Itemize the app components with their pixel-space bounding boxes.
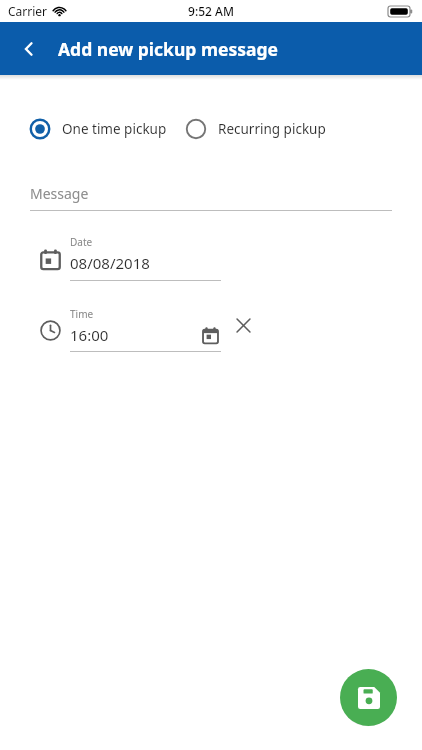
staticText: 9:52 AM — [188, 3, 234, 19]
button[interactable]: Back — [0, 22, 58, 75]
button[interactable]: One time pickup — [29, 118, 167, 140]
button[interactable]: Recurring pickup — [185, 118, 326, 140]
staticText: Time — [70, 307, 94, 321]
staticText: 08/08/2018 — [70, 253, 150, 273]
staticText: Add new pickup message — [58, 37, 279, 61]
staticText: 16:00 — [70, 325, 109, 345]
staticText: One time pickup — [62, 120, 167, 138]
button[interactable]: Save — [340, 669, 397, 726]
button[interactable]: Time — [70, 307, 221, 352]
staticText: Carrier — [8, 3, 48, 19]
staticText: Recurring pickup — [218, 120, 326, 138]
staticText: Date — [70, 235, 93, 249]
button[interactable]: Clear — [221, 310, 265, 352]
button[interactable]: Date — [0, 235, 422, 281]
staticText: Message — [30, 184, 89, 203]
button[interactable]: Message — [30, 184, 392, 211]
